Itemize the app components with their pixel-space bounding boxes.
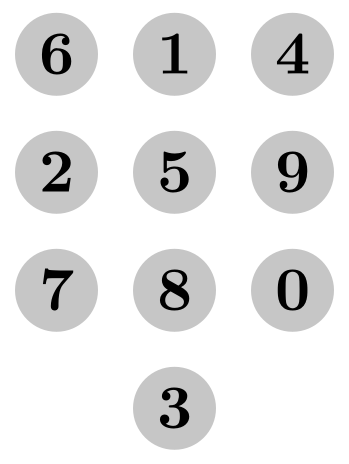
staticText: 9 (275, 122, 310, 210)
staticText: 5 (157, 122, 192, 210)
staticText: 6 (39, 4, 74, 92)
button[interactable]: 2 (15, 131, 98, 214)
staticText: 0 (275, 240, 310, 328)
button[interactable]: 3 (133, 367, 216, 450)
staticText: 4 (275, 4, 310, 92)
button[interactable]: 6 (15, 13, 98, 96)
staticText: 8 (157, 240, 192, 328)
button[interactable]: 7 (15, 249, 98, 332)
button[interactable]: 8 (133, 249, 216, 332)
button[interactable]: 5 (133, 131, 216, 214)
staticText: 1 (157, 4, 192, 92)
button[interactable]: 9 (251, 131, 334, 214)
button[interactable]: 0 (251, 249, 334, 332)
button[interactable]: 4 (251, 13, 334, 96)
button[interactable]: 1 (133, 13, 216, 96)
staticText: 3 (157, 358, 192, 446)
staticText: 2 (39, 122, 74, 210)
staticText: 7 (39, 240, 74, 328)
